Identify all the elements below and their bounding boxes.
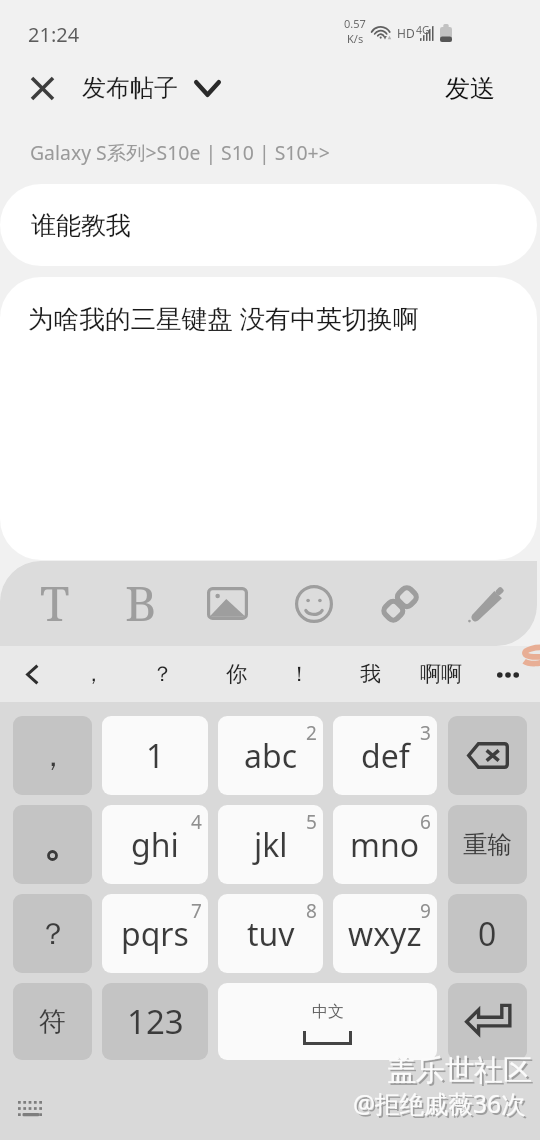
staticText: wxyz [348,912,422,956]
staticText: 123 [127,999,184,1044]
staticText: 4G [416,23,430,37]
button[interactable]: def [333,716,437,795]
button[interactable]: Enter [448,983,527,1060]
staticText: @拒绝戚薇36次 [353,1087,526,1120]
staticText: Galaxy S系列>S10e | S10 | S10+> [30,139,330,165]
staticText: abc [244,734,297,778]
button[interactable]: Emoji [271,561,357,646]
button[interactable]: 啊啊 [412,650,470,698]
staticText: ？ [38,915,68,953]
button[interactable]: ， [13,716,92,795]
button[interactable]: 我 [350,650,390,698]
button[interactable]: jkl [218,805,323,884]
button[interactable]: 123 [102,983,208,1060]
staticText: jkl [254,823,288,867]
staticText: T [40,570,70,635]
button[interactable]: 谁能教我 [0,184,537,266]
staticText: ， [83,661,104,687]
button[interactable]: 发布帖子 [74,62,229,114]
button[interactable]: Switch keyboard [4,1091,56,1127]
button[interactable]: abc [218,716,323,795]
staticText: 发送 [445,73,495,104]
staticText: 啊啊 [420,661,462,687]
button[interactable]: 0 [448,894,527,973]
staticText: 你 [226,661,247,687]
button[interactable]: ？ [142,650,182,698]
button[interactable]: wxyz [333,894,437,973]
button[interactable]: Ideographic full stop [13,805,92,884]
staticText: 为啥我的三星键盘 没有中英切换啊 [28,301,419,336]
button[interactable]: Back [12,654,52,694]
staticText: K/s [347,31,364,46]
button[interactable]: Insert image [184,561,270,646]
button[interactable]: Backspace [448,716,527,795]
staticText: B [125,570,157,635]
button[interactable]: 符 [13,983,92,1060]
staticText: ghi [131,823,179,867]
staticText: 重输 [463,829,512,860]
button[interactable]: 你 [216,650,256,698]
button[interactable]: Close [12,58,72,118]
staticText: 21:24 [28,21,80,48]
button[interactable]: 为啥我的三星键盘 没有中英切换啊 [0,277,537,560]
button[interactable]: 发送 [422,62,518,114]
staticText: 盖乐世社区 [387,1052,532,1089]
staticText: 1 [146,734,165,778]
button[interactable]: More options [487,654,528,695]
staticText: mno [350,823,420,867]
staticText: 0.57 [344,16,366,31]
staticText: ， [38,737,68,775]
staticText: ？ [152,661,173,687]
staticText: 中文 [312,1002,344,1022]
staticText: 2 [306,720,317,746]
staticText: 5 [306,809,317,835]
staticText: 发布帖子 [82,73,178,103]
button[interactable]: 重输 [448,805,527,884]
staticText: tuv [247,912,295,956]
staticText: HD [397,25,415,41]
staticText: def [361,734,410,778]
staticText: 3 [420,720,431,746]
button[interactable]: ！ [279,650,319,698]
button[interactable]: Text style [12,561,98,646]
staticText: 符 [39,1005,66,1039]
staticText: @拒绝戚薇36次 [355,1089,528,1122]
button[interactable]: ， [73,650,113,698]
button[interactable]: mno [333,805,437,884]
staticText: 8 [306,898,317,924]
button[interactable]: Bold [98,561,184,646]
staticText: 盖乐世社区 [389,1054,534,1091]
staticText: 9 [420,898,431,924]
button[interactable]: 1 [102,716,208,795]
staticText: 0 [478,912,497,956]
button[interactable]: ghi [102,805,208,884]
staticText: 我 [360,661,381,687]
button[interactable]: Draw [443,561,529,646]
button[interactable]: Insert link [357,561,443,646]
button[interactable]: Space [218,983,437,1060]
staticText: 4 [191,809,202,835]
staticText: 谁能教我 [31,210,131,241]
staticText: ！ [289,661,310,687]
staticText: pqrs [121,912,189,956]
button[interactable]: tuv [218,894,323,973]
staticText: 6 [420,809,431,835]
staticText: 7 [191,898,202,924]
button[interactable]: pqrs [102,894,208,973]
button[interactable]: ？ [13,894,92,973]
